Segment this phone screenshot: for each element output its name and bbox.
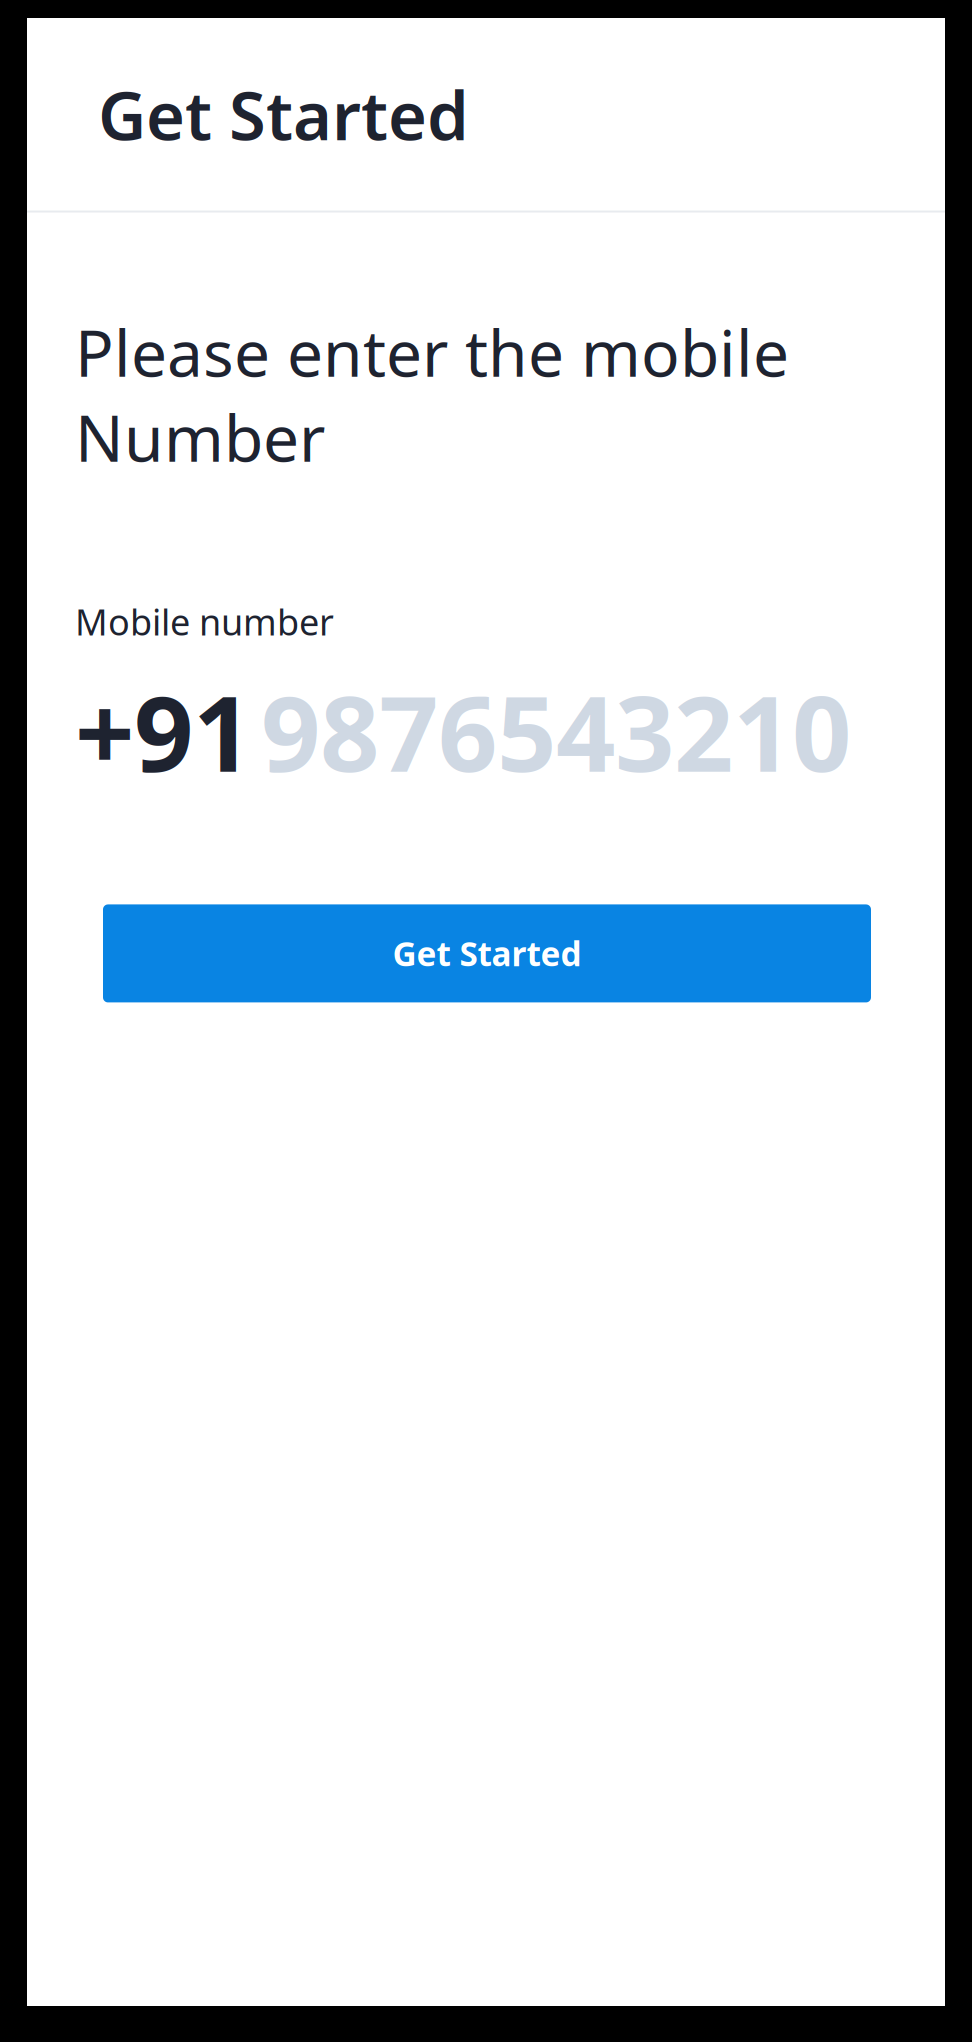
button[interactable]: Mobile number, +91 bbox=[75, 662, 851, 800]
staticText: Mobile number bbox=[75, 597, 334, 645]
staticText: Please enter the mobile Number bbox=[75, 309, 789, 479]
button[interactable]: Get Started bbox=[103, 904, 871, 1002]
staticText: 9876543210 bbox=[261, 662, 851, 800]
staticText: Get Started bbox=[392, 931, 581, 976]
staticText: Get Started bbox=[98, 70, 469, 158]
staticText: +91 bbox=[75, 662, 252, 800]
